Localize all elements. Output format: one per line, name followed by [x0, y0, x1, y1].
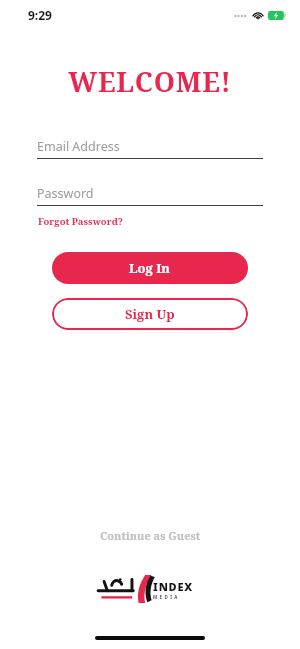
- button[interactable]: Continue as Guest: [92, 523, 209, 548]
- button[interactable]: Log In: [52, 252, 248, 284]
- staticText: M E D I A: [153, 594, 179, 600]
- button[interactable]: Password: [37, 185, 263, 206]
- button[interactable]: Sign Up: [52, 298, 248, 330]
- button[interactable]: Email Address: [37, 138, 263, 159]
- button[interactable]: Forgot Password?: [37, 213, 125, 230]
- staticText: Password: [37, 185, 94, 202]
- staticText: 9:29: [28, 7, 52, 23]
- staticText: Sign Up: [125, 305, 175, 323]
- other: Index Media logo: [96, 575, 204, 603]
- staticText: WELCOME!: [0, 63, 300, 100]
- staticText: Continue as Guest: [100, 528, 201, 543]
- staticText: Log In: [129, 259, 171, 277]
- staticText: INDEX: [153, 579, 194, 594]
- staticText: Email Address: [37, 138, 120, 155]
- staticText: Forgot Password?: [38, 215, 124, 228]
